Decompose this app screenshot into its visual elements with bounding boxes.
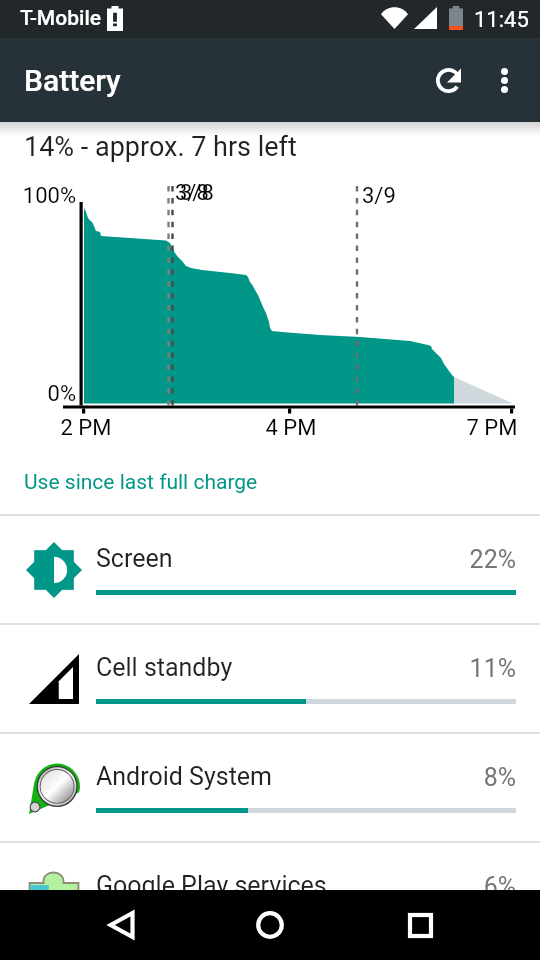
staticText: 14% - approx. 7 hrs left	[24, 131, 297, 163]
button[interactable]: Google Play services	[0, 843, 540, 950]
button[interactable]: Home	[225, 890, 315, 960]
staticText: Use since last full charge	[24, 470, 258, 495]
button[interactable]: Android System	[0, 734, 540, 841]
button[interactable]: Cell standby	[0, 625, 540, 732]
staticText: 7 PM	[453, 415, 531, 441]
staticText: 8%	[340, 763, 516, 792]
staticText: Google Play services	[96, 871, 327, 900]
staticText: 0%	[0, 381, 76, 407]
staticText: 3/9	[362, 183, 396, 209]
staticText: 6%	[340, 872, 516, 901]
staticText: Battery	[24, 63, 121, 98]
staticText: 2 PM	[47, 415, 125, 441]
staticText: Screen	[96, 544, 173, 573]
staticText: 22%	[340, 545, 516, 574]
staticText: Android System	[96, 762, 273, 791]
staticText: 3/8	[180, 180, 214, 206]
staticText: 100%	[0, 183, 76, 209]
staticText: Cell standby	[96, 653, 233, 682]
staticText: T-Mobile	[20, 6, 102, 31]
button[interactable]: Use since last full charge	[0, 450, 540, 514]
staticText: 3/8	[175, 180, 209, 206]
button[interactable]: Recent apps	[375, 890, 465, 960]
staticText: 11:45	[474, 7, 529, 33]
button[interactable]: Screen	[0, 516, 540, 623]
staticText: 4 PM	[252, 415, 330, 441]
button[interactable]: Refresh	[420, 52, 476, 108]
button[interactable]: More options	[476, 52, 532, 108]
staticText: 11%	[340, 654, 516, 683]
button[interactable]: Back	[78, 890, 168, 960]
